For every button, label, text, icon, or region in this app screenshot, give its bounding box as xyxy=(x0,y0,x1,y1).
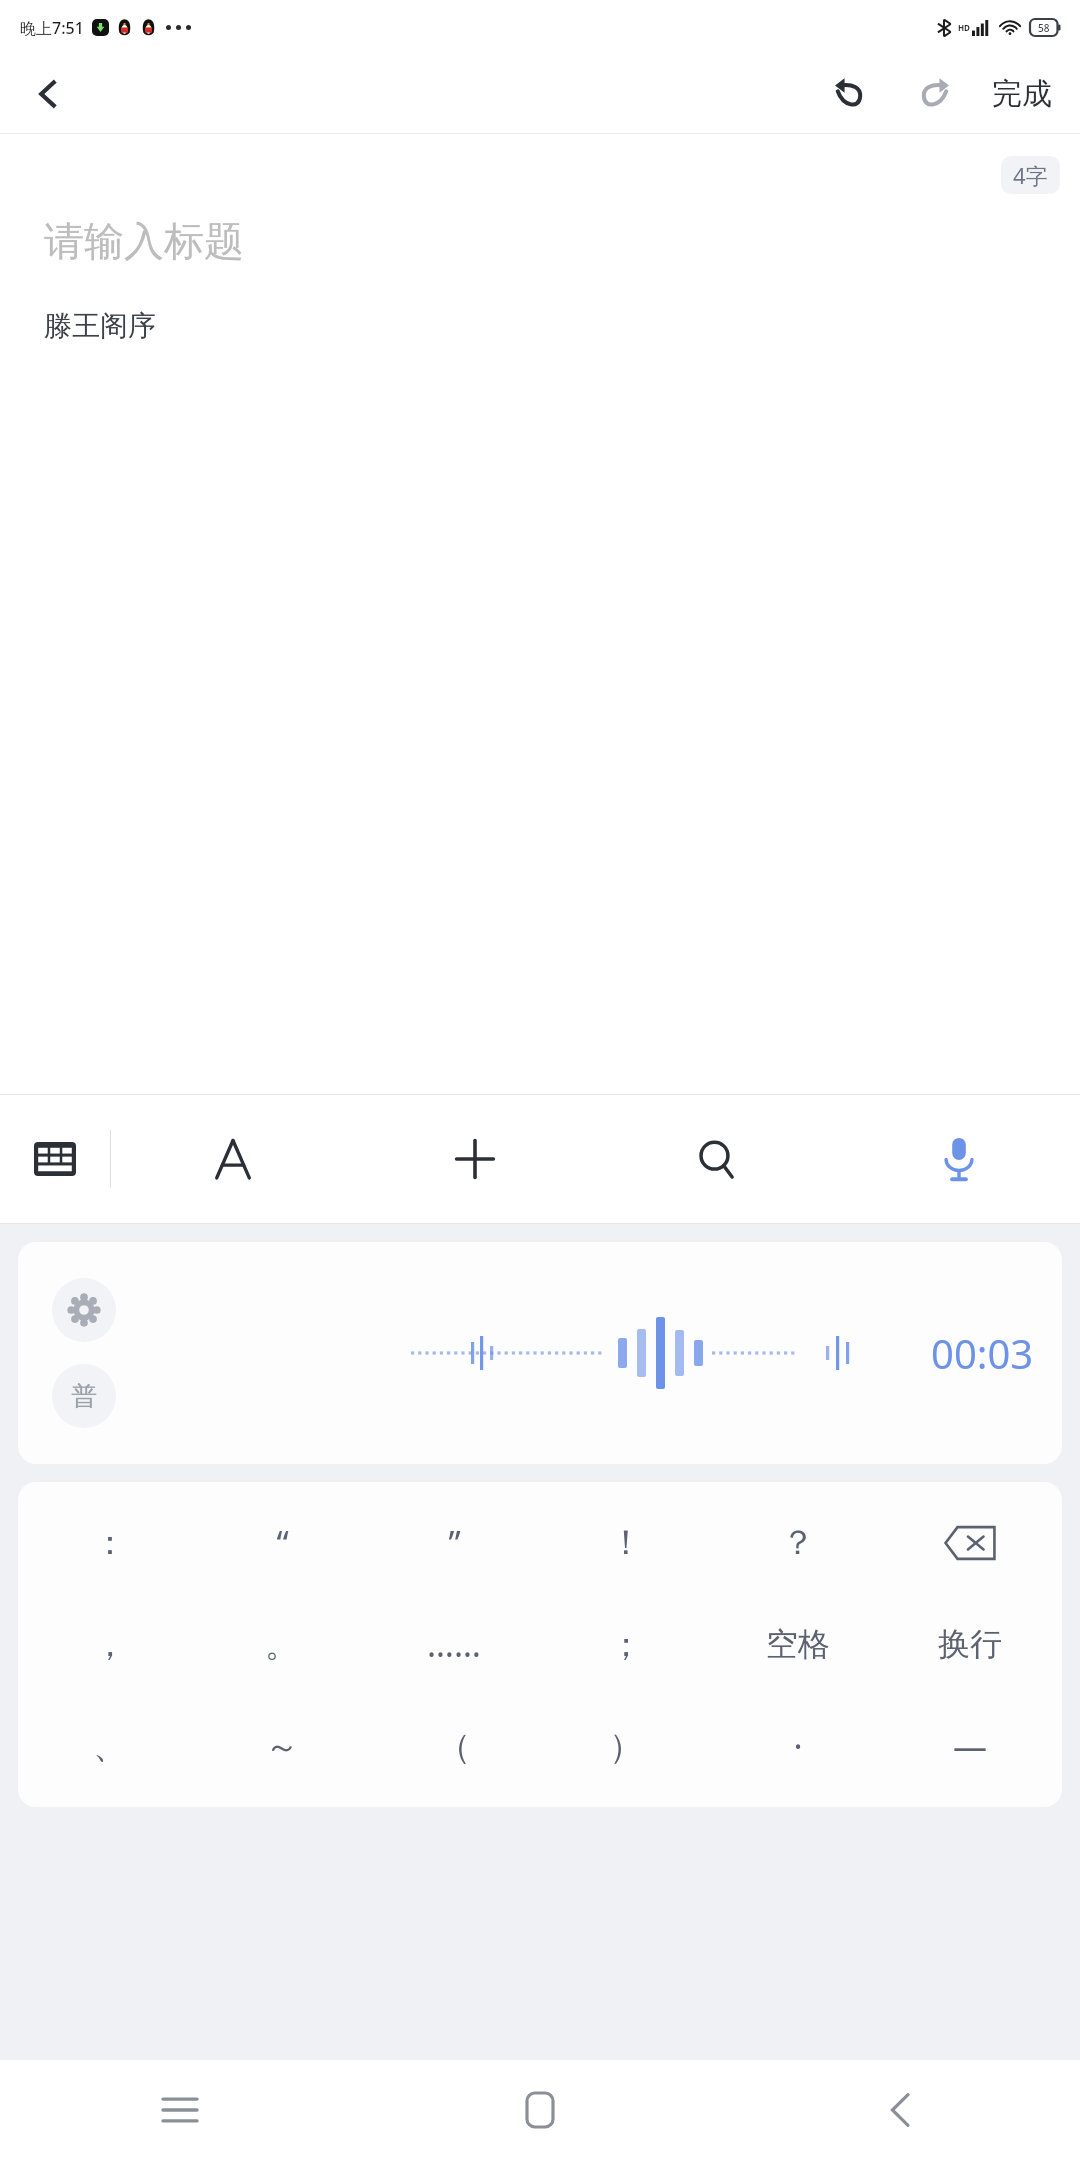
staticText: 换行 xyxy=(938,1624,1002,1664)
button[interactable]: Redo xyxy=(902,62,966,126)
staticText: ： xyxy=(93,1521,127,1564)
staticText: — xyxy=(953,1723,987,1769)
button[interactable]: Voice input xyxy=(838,1095,1080,1223)
button[interactable]: — xyxy=(884,1695,1056,1797)
button[interactable]: 普 xyxy=(52,1364,116,1428)
button[interactable]: Font xyxy=(111,1095,354,1223)
button[interactable]: “ xyxy=(196,1492,368,1593)
button[interactable]: ； xyxy=(540,1593,712,1695)
button[interactable]: Add xyxy=(354,1095,596,1223)
button[interactable]: · xyxy=(712,1695,884,1797)
button[interactable]: ～ xyxy=(196,1695,368,1797)
staticText: （ xyxy=(437,1725,471,1768)
staticText: 4字 xyxy=(1013,160,1048,190)
button[interactable]: （ xyxy=(368,1695,540,1797)
staticText: ！ xyxy=(609,1521,643,1564)
button[interactable]: ： xyxy=(24,1492,196,1593)
staticText: ， xyxy=(93,1623,127,1666)
button[interactable]: Backspace xyxy=(884,1492,1056,1593)
button[interactable]: 换行 xyxy=(884,1593,1056,1695)
staticText: HD xyxy=(958,22,970,33)
button[interactable]: ） xyxy=(540,1695,712,1797)
staticText: 58 xyxy=(1038,21,1050,35)
staticText: 。 xyxy=(265,1623,299,1666)
button[interactable]: Undo xyxy=(818,62,882,126)
button[interactable]: Search xyxy=(596,1095,838,1223)
staticText: ） xyxy=(609,1725,643,1768)
button[interactable]: 、 xyxy=(24,1695,196,1797)
staticText: 完成 xyxy=(992,75,1052,113)
button[interactable]: …… xyxy=(368,1593,540,1695)
button[interactable]: ？ xyxy=(712,1492,884,1593)
button[interactable]: Keyboard xyxy=(0,1095,110,1223)
staticText: ～ xyxy=(265,1725,299,1768)
button[interactable]: Recents xyxy=(0,2060,360,2160)
button[interactable]: ， xyxy=(24,1593,196,1695)
button[interactable]: Home xyxy=(360,2060,720,2160)
button[interactable]: ！ xyxy=(540,1492,712,1593)
staticText: 空格 xyxy=(766,1624,830,1664)
staticText: 晚上7:51 xyxy=(20,17,84,39)
staticText: · xyxy=(793,1723,803,1769)
staticText: ； xyxy=(609,1623,643,1666)
staticText: ？ xyxy=(781,1521,815,1564)
button[interactable]: 空格 xyxy=(712,1593,884,1695)
staticText: ” xyxy=(448,1520,461,1566)
staticText: 、 xyxy=(93,1725,127,1768)
button[interactable]: 完成 xyxy=(982,67,1062,121)
button[interactable]: Settings xyxy=(52,1278,116,1342)
button[interactable]: 。 xyxy=(196,1593,368,1695)
button[interactable]: Back xyxy=(20,66,76,122)
staticText: 请输入标题 xyxy=(44,216,244,266)
staticText: …… xyxy=(427,1621,481,1667)
staticText: 00:03 xyxy=(931,1326,1034,1380)
staticText: 滕王阁序 xyxy=(44,308,156,343)
staticText: 普 xyxy=(71,1380,97,1413)
button[interactable]: ” xyxy=(368,1492,540,1593)
staticText: “ xyxy=(276,1520,289,1566)
button[interactable]: Back xyxy=(720,2060,1080,2160)
